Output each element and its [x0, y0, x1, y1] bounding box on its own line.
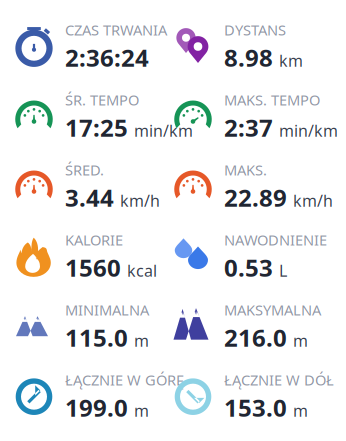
staticText: ŁĄCZNIE W GÓRĘ: [65, 370, 184, 389]
staticText: MAKS. TEMPO: [224, 90, 320, 109]
button[interactable]: ŁĄCZNIE W DÓŁ: [173, 370, 332, 423]
button[interactable]: MAKS. TEMPO: [173, 90, 332, 143]
staticText: DYSTANS: [224, 20, 286, 39]
staticText: 216.0: [224, 321, 287, 353]
staticText: ŚRED.: [65, 160, 104, 179]
button[interactable]: NAWODNIENIE: [173, 230, 332, 283]
staticText: 0.53: [224, 251, 273, 283]
staticText: MAKSYMALNA: [224, 300, 321, 319]
staticText: 2:36:24: [65, 41, 149, 73]
button[interactable]: KALORIE: [14, 230, 173, 283]
staticText: 153.0: [224, 391, 287, 423]
staticText: kcal: [127, 260, 157, 281]
staticText: m: [134, 330, 149, 351]
button[interactable]: DYSTANS: [173, 20, 332, 73]
staticText: min/km: [134, 120, 193, 141]
staticText: 17:25: [65, 111, 128, 143]
button[interactable]: CZAS TRWANIA: [14, 20, 173, 73]
button[interactable]: MAKSYMALNA: [173, 300, 332, 353]
staticText: MAKS.: [224, 160, 267, 179]
staticText: KALORIE: [65, 230, 123, 249]
staticText: 8.98: [224, 41, 273, 73]
staticText: km/h: [120, 190, 160, 211]
button[interactable]: ŁĄCZNIE W GÓRĘ: [14, 370, 173, 423]
staticText: km: [279, 50, 303, 71]
staticText: L: [279, 260, 287, 281]
staticText: min/km: [279, 120, 338, 141]
staticText: ŚR. TEMPO: [65, 90, 139, 109]
staticText: 22.89: [224, 181, 287, 213]
staticText: 1560: [65, 251, 121, 283]
button[interactable]: MINIMALNA: [14, 300, 173, 353]
staticText: km/h: [293, 190, 333, 211]
staticText: m: [293, 400, 308, 421]
staticText: NAWODNIENIE: [224, 230, 327, 249]
staticText: m: [293, 330, 308, 351]
staticText: 115.0: [65, 321, 128, 353]
staticText: 3.44: [65, 181, 114, 213]
button[interactable]: ŚRED.: [14, 160, 173, 213]
staticText: 199.0: [65, 391, 128, 423]
staticText: 2:37: [224, 111, 273, 143]
staticText: CZAS TRWANIA: [65, 20, 167, 39]
button[interactable]: ŚR. TEMPO: [14, 90, 173, 143]
staticText: m: [134, 400, 149, 421]
button[interactable]: MAKS.: [173, 160, 332, 213]
staticText: MINIMALNA: [65, 300, 149, 319]
staticText: ŁĄCZNIE W DÓŁ: [224, 370, 334, 389]
